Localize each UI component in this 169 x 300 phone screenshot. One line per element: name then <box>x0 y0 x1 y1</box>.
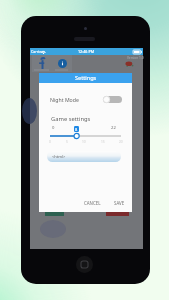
staticText: 5 <box>66 140 68 144</box>
staticText: 15 <box>101 140 105 144</box>
staticText: 8 <box>75 127 78 132</box>
staticText: <html> <box>52 154 66 159</box>
staticText: Settings <box>75 74 97 82</box>
button[interactable]: Night Mode <box>39 92 132 106</box>
staticText: 20 <box>119 140 123 144</box>
button[interactable]: <html> <box>47 151 121 162</box>
staticText: 0 <box>49 140 51 144</box>
button[interactable]: About <box>52 54 72 72</box>
button[interactable]: CANCEL <box>81 198 104 208</box>
staticText: 12:46 PM <box>78 49 95 54</box>
button[interactable]: Facebook <box>32 54 52 72</box>
staticText: SAVE <box>114 200 125 206</box>
staticText: Carrier <box>31 49 43 54</box>
staticText: 0 <box>52 125 55 131</box>
staticText: 10 <box>82 140 86 144</box>
staticText: Night Mode <box>50 96 79 103</box>
staticText: CANCEL <box>84 200 101 206</box>
staticText: Game settings <box>51 115 91 123</box>
staticText: Version 1.0 <box>127 56 144 60</box>
button[interactable]: SAVE <box>111 198 128 208</box>
staticText: 22 <box>111 125 116 131</box>
